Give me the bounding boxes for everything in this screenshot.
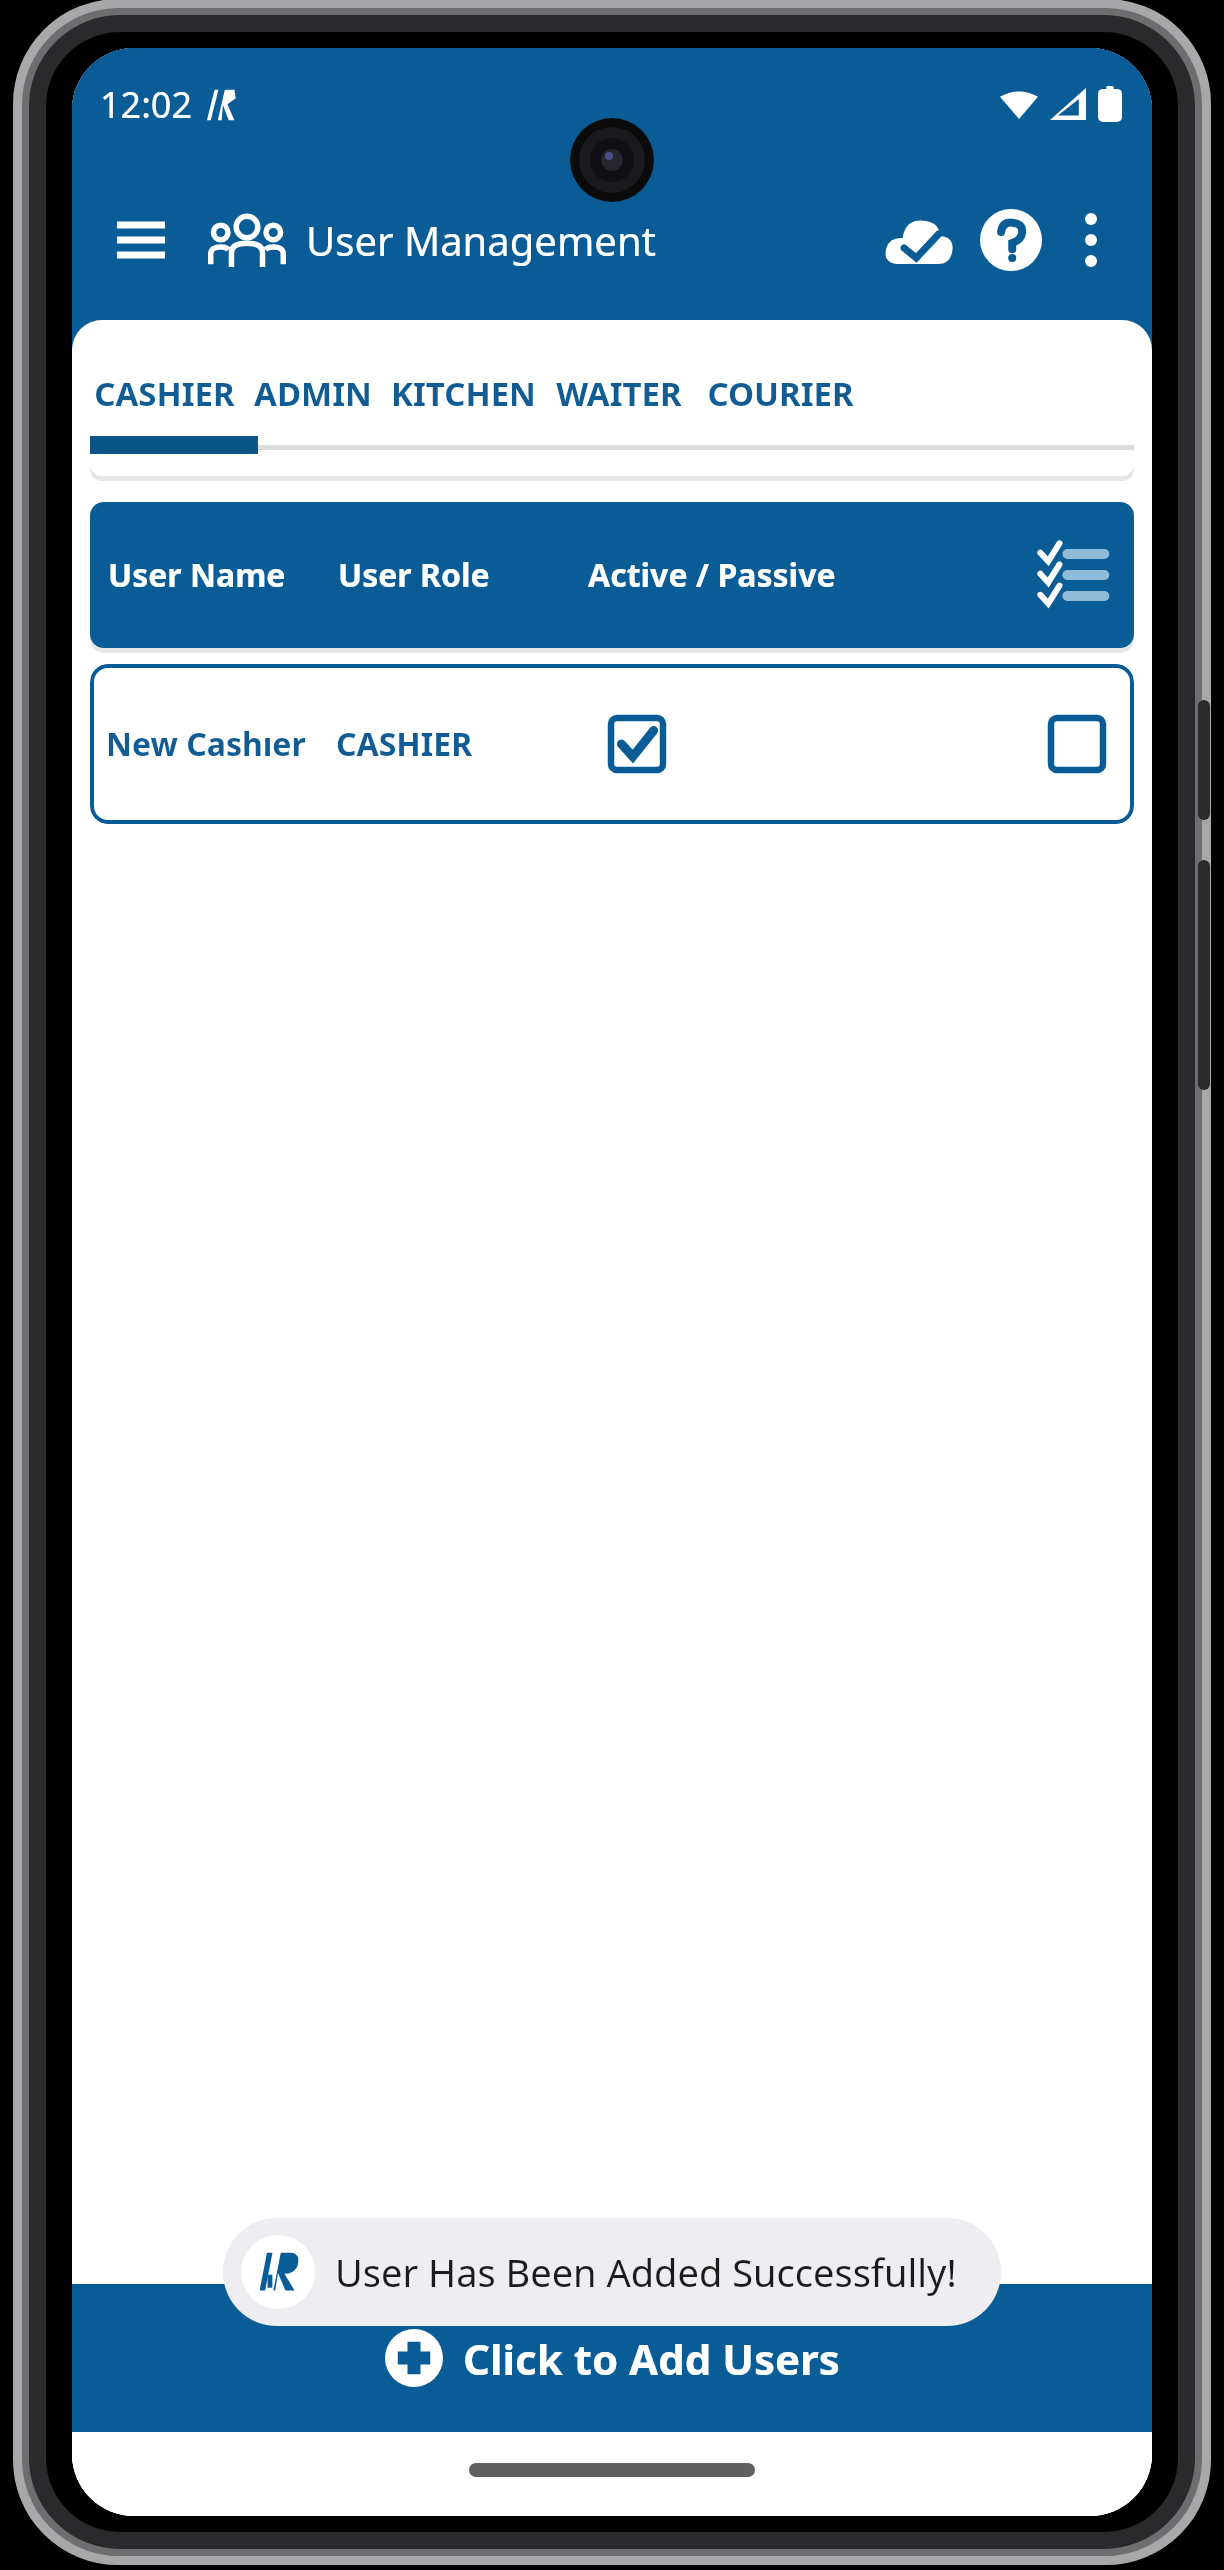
button[interactable]: User Has Been Added Successfully! [223, 2218, 1001, 2326]
staticText: KITCHEN [391, 371, 536, 416]
staticText: Click to Add Users [463, 2330, 840, 2387]
staticText: User Role [338, 553, 490, 597]
staticText: New Cashıer [106, 722, 306, 766]
button[interactable]: KITCHEN [388, 364, 538, 422]
staticText: COURIER [707, 371, 854, 416]
button[interactable]: Help [968, 197, 1054, 283]
staticText: ADMIN [254, 371, 372, 416]
button[interactable]: More options [1056, 205, 1126, 275]
staticText: User Name [108, 553, 286, 597]
button[interactable]: Select all [1032, 535, 1112, 615]
button[interactable]: CASHIER [90, 364, 238, 422]
staticText: CASHIER [94, 371, 235, 416]
staticText: User Has Been Added Successfully! [335, 2246, 957, 2298]
staticText: CASHIER [336, 722, 473, 766]
button[interactable]: Sync status [876, 197, 962, 283]
button[interactable]: Click to Add Users [72, 2284, 1152, 2432]
staticText: User Management [306, 213, 657, 267]
staticText: Active / Passive [588, 553, 836, 597]
staticText: WAITER [556, 371, 682, 416]
button[interactable]: ADMIN [254, 364, 372, 422]
button[interactable]: Select user [1042, 709, 1112, 779]
button[interactable]: COURIER [704, 364, 856, 422]
button[interactable]: New Cashıer [90, 664, 1134, 824]
button[interactable]: WAITER [556, 364, 682, 422]
button[interactable]: Active [602, 709, 672, 779]
staticText: 12:02 [100, 80, 193, 129]
button[interactable]: Open navigation menu [102, 201, 180, 279]
